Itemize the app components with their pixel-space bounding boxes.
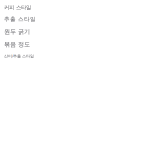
staticText: 원두 굵기 [4, 28, 30, 35]
staticText: 추출 스타일 [4, 16, 36, 23]
staticText: 커피 스타일 [4, 4, 31, 11]
staticText: 산미/추출 스타일 [4, 53, 34, 59]
staticText: 볶음 정도 [4, 40, 30, 48]
